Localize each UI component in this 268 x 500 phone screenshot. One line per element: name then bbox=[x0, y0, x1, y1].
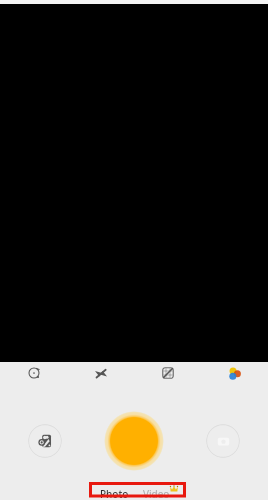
button[interactable]: Filters bbox=[201, 359, 268, 387]
button[interactable]: Grid off bbox=[134, 359, 201, 387]
staticText: Photo bbox=[100, 487, 129, 500]
button[interactable]: Gallery bbox=[28, 424, 62, 458]
staticText: Video bbox=[143, 487, 170, 500]
button[interactable]: Flash off bbox=[67, 359, 134, 387]
button[interactable]: Switch camera bbox=[206, 424, 240, 458]
button[interactable]: Photo bbox=[100, 487, 129, 500]
button[interactable]: Video bbox=[143, 487, 170, 500]
button[interactable]: Timer bbox=[0, 359, 67, 387]
button[interactable]: Shutter bbox=[104, 411, 164, 471]
